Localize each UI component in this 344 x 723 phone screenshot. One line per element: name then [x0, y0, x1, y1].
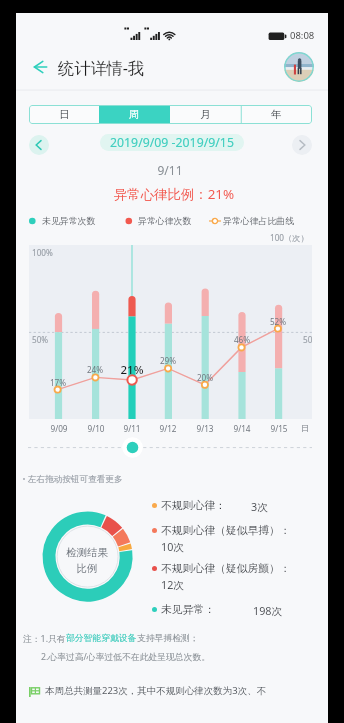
staticText: 统计详情-我 [58, 57, 145, 79]
staticText: 2019/9/09 -2019/9/15 [110, 134, 234, 151]
staticText: 3次 [251, 499, 268, 514]
staticText: 异常心律次数 [138, 215, 192, 226]
staticText: 29% [156, 355, 180, 366]
staticText: 9/11 [117, 423, 147, 434]
staticText: 日 [301, 423, 310, 433]
staticText: 未见异常： [161, 603, 215, 617]
button[interactable]: Profile [284, 52, 314, 82]
staticText: 21% [117, 362, 147, 378]
button[interactable]: 年 [241, 105, 312, 124]
staticText: 异常心律比例：21% [64, 185, 284, 203]
staticText: 46% [230, 334, 254, 345]
staticText: 不规则心律（疑似房颤）： [161, 562, 291, 576]
staticText: 50 [303, 334, 313, 345]
staticText: 异常心律占比曲线 [223, 215, 295, 226]
staticText: 9/15 [264, 423, 294, 434]
staticText: 左右拖动按钮可查看更多 [28, 474, 123, 485]
staticText: 100（次） [270, 232, 309, 243]
button[interactable]: Previous week [29, 135, 49, 155]
staticText: 9/09 [44, 423, 74, 434]
staticText: 9/12 [153, 423, 183, 434]
staticText: 08:08 [290, 29, 315, 42]
staticText: 198次 [253, 603, 283, 618]
staticText: 50% [32, 334, 49, 345]
staticText: 52% [266, 316, 290, 327]
button[interactable]: Next week [292, 135, 312, 155]
staticText: 100% [32, 247, 53, 258]
staticText: 未见异常次数 [42, 215, 96, 226]
staticText: 2.心率过高/心率过低不在此处呈现总次数。 [41, 651, 211, 663]
staticText: 10次 [161, 539, 185, 554]
staticText: 9/14 [227, 423, 257, 434]
staticText: 年 [271, 108, 282, 121]
staticText: 月 [200, 108, 211, 121]
staticText: 注：1.只有 [23, 633, 66, 645]
staticText: 不规则心律（疑似早搏）： [161, 524, 291, 538]
staticText: 12次 [161, 577, 185, 592]
staticText: 支持早搏检测； [137, 633, 199, 644]
staticText: 9/11 [150, 162, 190, 178]
staticText: 不规则心律： [161, 499, 226, 513]
button[interactable]: 周 [99, 105, 170, 124]
button[interactable]: 月 [170, 105, 241, 124]
staticText: 部分智能穿戴设备 [66, 633, 137, 644]
staticText: 20% [193, 372, 217, 383]
staticText: 9/13 [190, 423, 220, 434]
staticText: 本周总共测量223次，其中不规则心律次数为3次、不 [45, 684, 267, 697]
staticText: 周 [129, 108, 140, 121]
staticText: 检测结果 [52, 546, 122, 559]
staticText: 17% [46, 377, 70, 388]
staticText: 日 [59, 108, 70, 121]
staticText: 24% [83, 364, 107, 375]
button[interactable]: 2019/9/09 -2019/9/15 [100, 134, 244, 151]
staticText: 9/10 [81, 423, 111, 434]
button[interactable]: Back [26, 53, 54, 81]
button[interactable]: 日 [29, 105, 99, 124]
button[interactable]: Date slider handle [122, 437, 143, 458]
staticText: 比例 [52, 562, 122, 575]
